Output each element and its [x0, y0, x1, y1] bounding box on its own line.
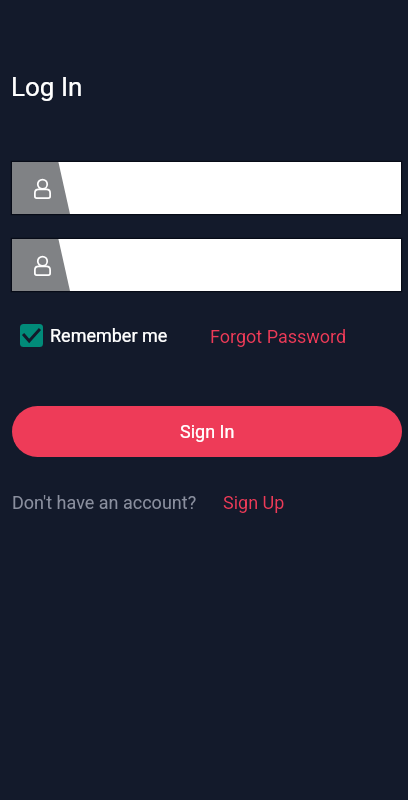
button[interactable]: Username — [12, 162, 401, 214]
staticText: Sign In — [180, 421, 235, 442]
button[interactable]: Password — [12, 239, 401, 291]
button[interactable]: Sign Up — [223, 492, 285, 513]
staticText: Don't have an account? — [12, 492, 197, 513]
staticText: Log In — [11, 72, 83, 102]
staticText: Remember me — [50, 325, 168, 346]
button[interactable]: Sign In — [12, 406, 402, 457]
button[interactable]: Forgot Password — [210, 326, 347, 347]
button[interactable]: Remember me — [20, 324, 168, 347]
